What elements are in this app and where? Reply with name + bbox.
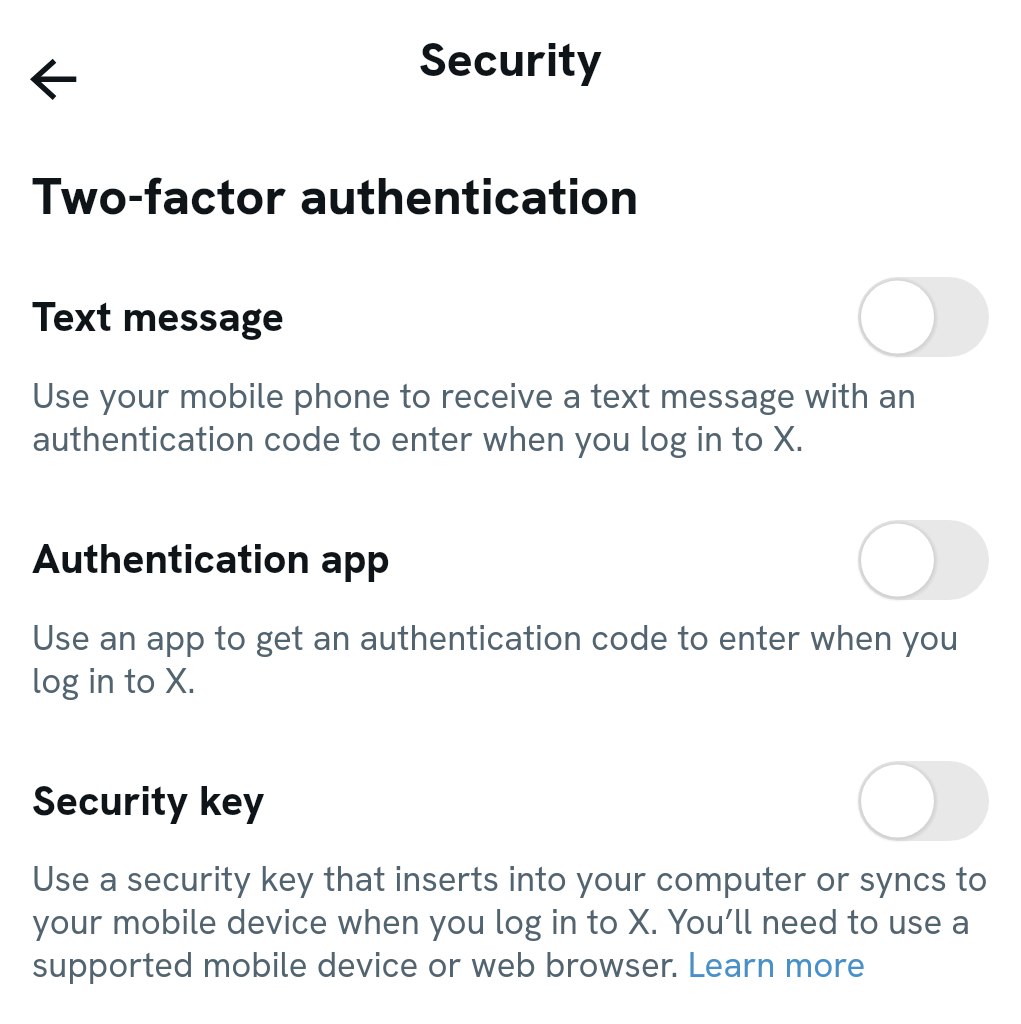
button[interactable]: Authentication app two-factor authentica… (852, 514, 995, 606)
staticText: Security key (32, 774, 265, 827)
staticText: Two-factor authentication (32, 163, 639, 229)
button[interactable]: Security key two-factor authentication (852, 755, 995, 847)
staticText: Security (419, 28, 603, 91)
staticText: Text message (32, 290, 284, 343)
staticText: Use your mobile phone to receive a text … (32, 373, 988, 462)
button[interactable]: Back (14, 40, 92, 118)
button[interactable]: Text message two-factor authentication (852, 271, 995, 363)
staticText: Use an app to get an authentication code… (32, 615, 988, 704)
staticText: Use a security key that inserts into you… (32, 856, 988, 988)
staticText: Authentication app (32, 532, 390, 585)
